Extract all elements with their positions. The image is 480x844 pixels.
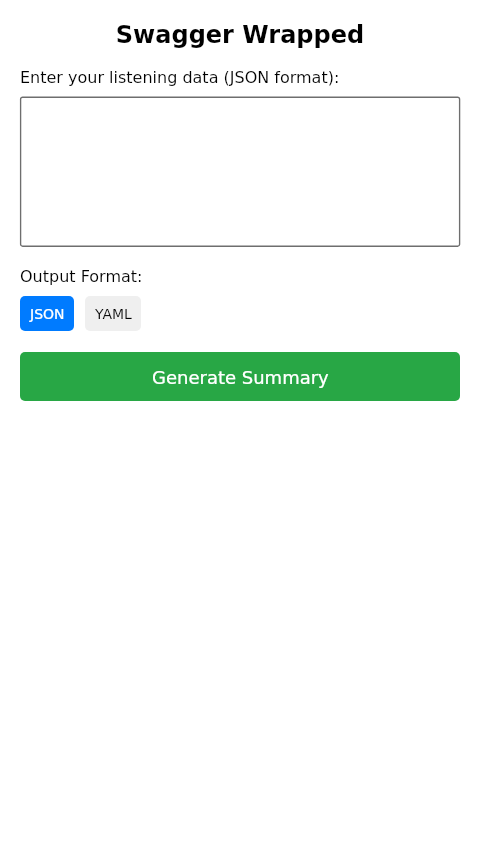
button[interactable]: JSON [20, 296, 74, 331]
button[interactable]: Listening data input field [20, 96, 461, 248]
button[interactable]: Generate Summary [20, 352, 460, 401]
button[interactable]: YAML [85, 296, 141, 331]
staticText: Output Format: [20, 267, 143, 286]
staticText: Enter your listening data (JSON format): [20, 68, 340, 87]
staticText: YAML [95, 306, 132, 322]
staticText: Generate Summary [152, 367, 329, 388]
staticText: Swagger Wrapped [0, 21, 480, 844]
staticText: JSON [30, 306, 65, 322]
